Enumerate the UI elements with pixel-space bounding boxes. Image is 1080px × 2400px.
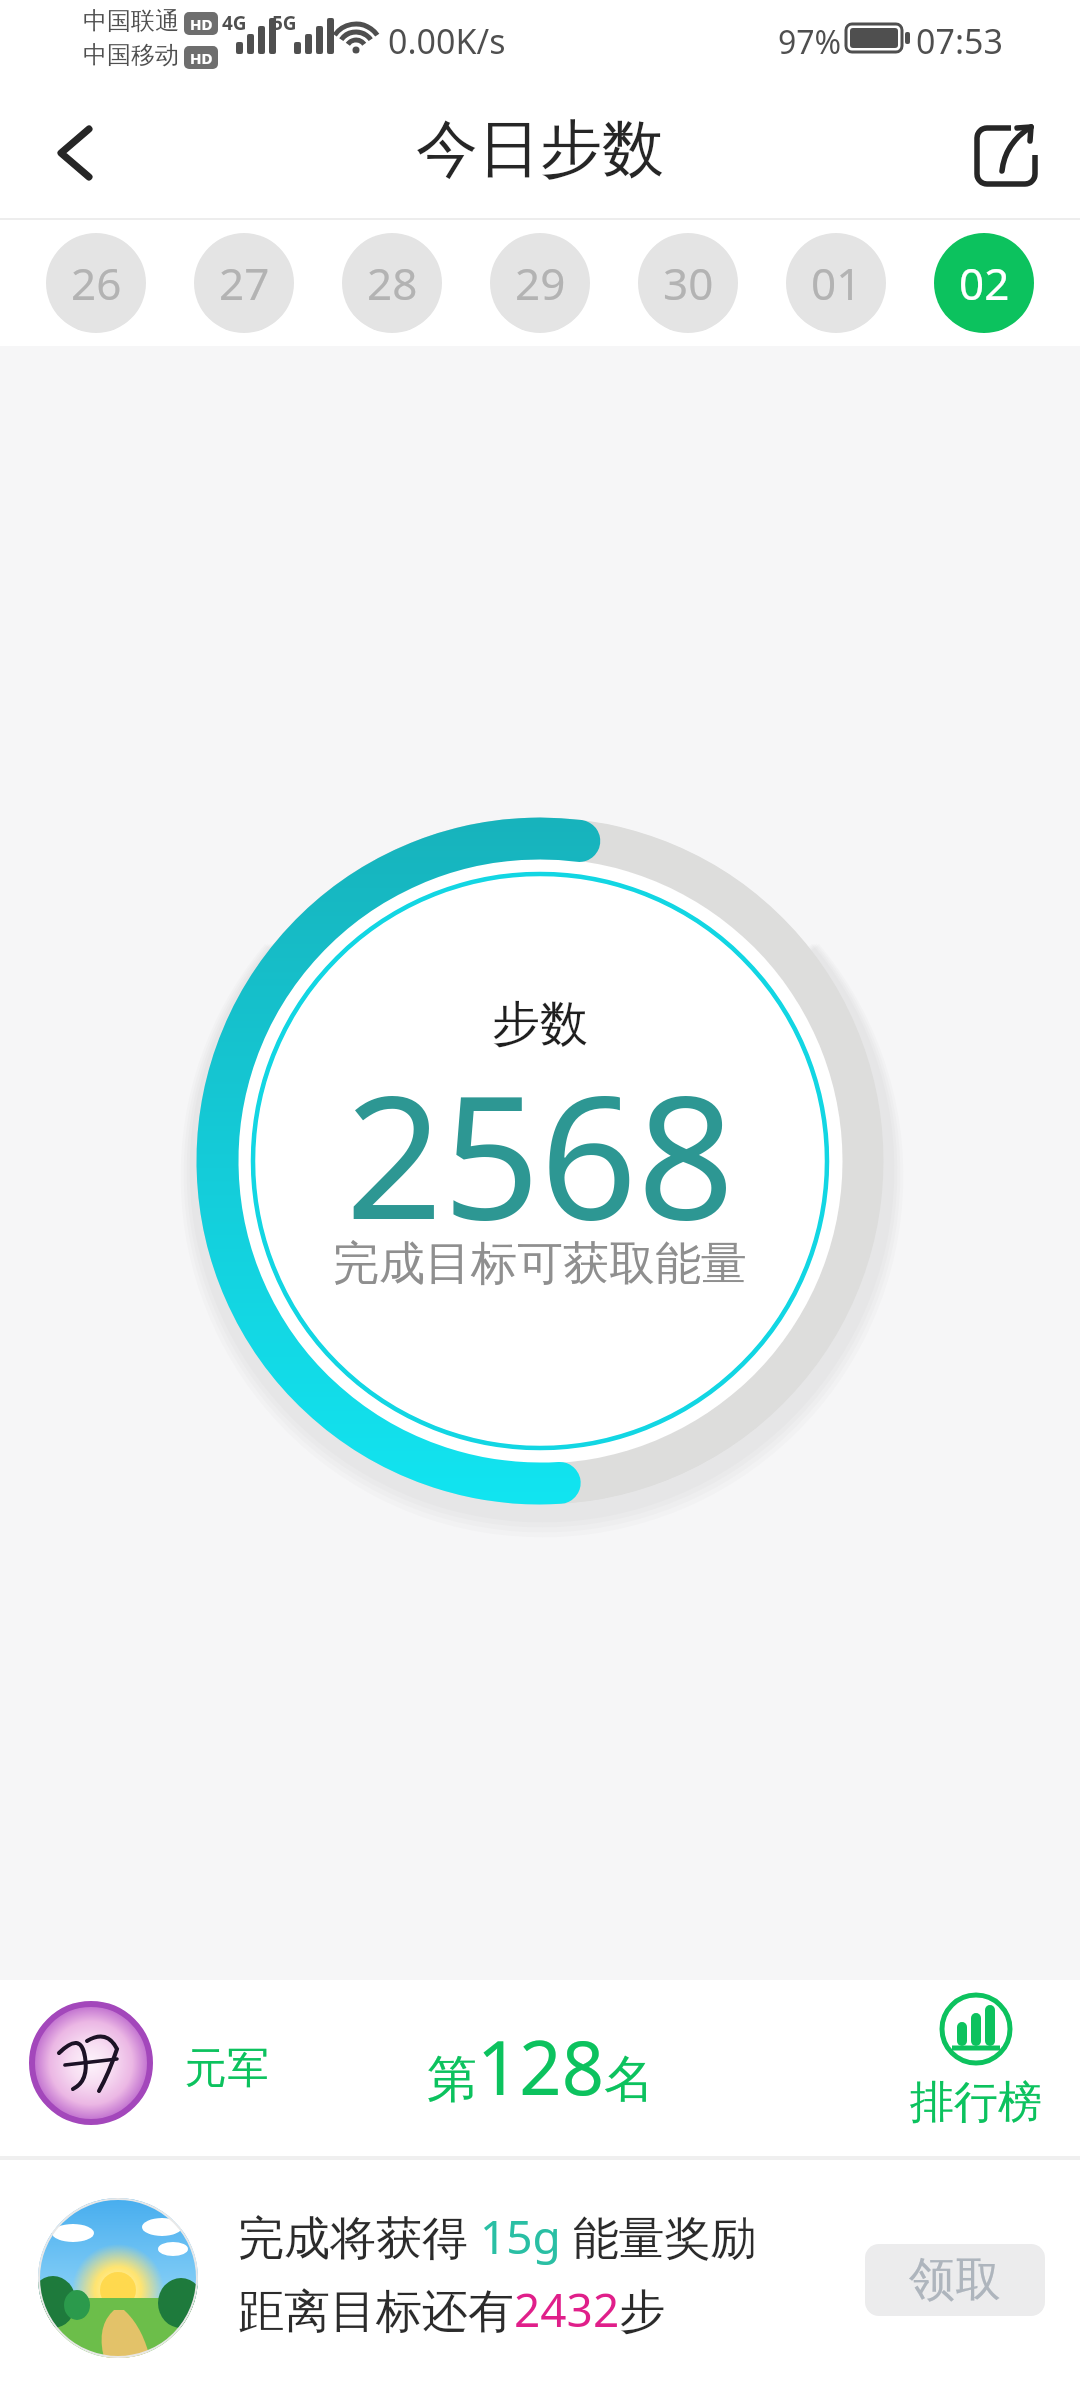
button[interactable] bbox=[30, 110, 120, 200]
staticText: HD bbox=[190, 14, 213, 34]
staticText: 26 bbox=[71, 253, 122, 313]
staticText: HD bbox=[190, 48, 213, 68]
staticText: 完成目标可获取能量 bbox=[0, 1235, 1080, 1293]
staticText: 29 bbox=[515, 253, 566, 313]
staticText: 28 bbox=[367, 253, 418, 313]
staticText: 元军 bbox=[185, 2042, 269, 2095]
button[interactable]: 26 bbox=[46, 233, 146, 333]
staticText: 4G bbox=[222, 10, 247, 36]
button[interactable] bbox=[962, 110, 1052, 200]
staticText: 5G bbox=[272, 10, 297, 36]
staticText: 今日步数 bbox=[0, 110, 1080, 188]
staticText: 30 bbox=[663, 253, 714, 313]
button[interactable]: 01 bbox=[786, 233, 886, 333]
staticText: 07:53 bbox=[916, 18, 1003, 64]
button[interactable]: 元军 bbox=[0, 1980, 1080, 2156]
staticText: 97% bbox=[778, 20, 842, 64]
staticText: 排行榜 bbox=[910, 2075, 1042, 2130]
staticText: 128 bbox=[477, 2016, 604, 2117]
staticText: 步数 bbox=[0, 994, 1080, 1054]
staticText: 0.00K/s bbox=[388, 18, 506, 64]
staticText: 完成将获得 15g 能量奖励 bbox=[238, 2205, 757, 2268]
button[interactable]: 领取 bbox=[865, 2244, 1045, 2316]
button[interactable]: 02 bbox=[934, 233, 1034, 333]
staticText: 中国联通 bbox=[83, 6, 179, 36]
button[interactable]: 29 bbox=[490, 233, 590, 333]
button[interactable]: 28 bbox=[342, 233, 442, 333]
button[interactable]: 排行榜 bbox=[910, 1991, 1042, 2130]
staticText: 第 bbox=[427, 2048, 477, 2111]
staticText: 01 bbox=[811, 253, 862, 313]
staticText: 27 bbox=[219, 253, 270, 313]
staticText: 名 bbox=[604, 2048, 654, 2111]
button[interactable]: 30 bbox=[638, 233, 738, 333]
staticText: 02 bbox=[959, 253, 1010, 313]
staticText: 2568 bbox=[0, 1037, 1080, 1269]
staticText: 距离目标还有2432步 bbox=[238, 2278, 666, 2341]
button[interactable]: 27 bbox=[194, 233, 294, 333]
staticText: 领取 bbox=[909, 2251, 1001, 2309]
staticText: 中国移动 bbox=[83, 40, 179, 70]
